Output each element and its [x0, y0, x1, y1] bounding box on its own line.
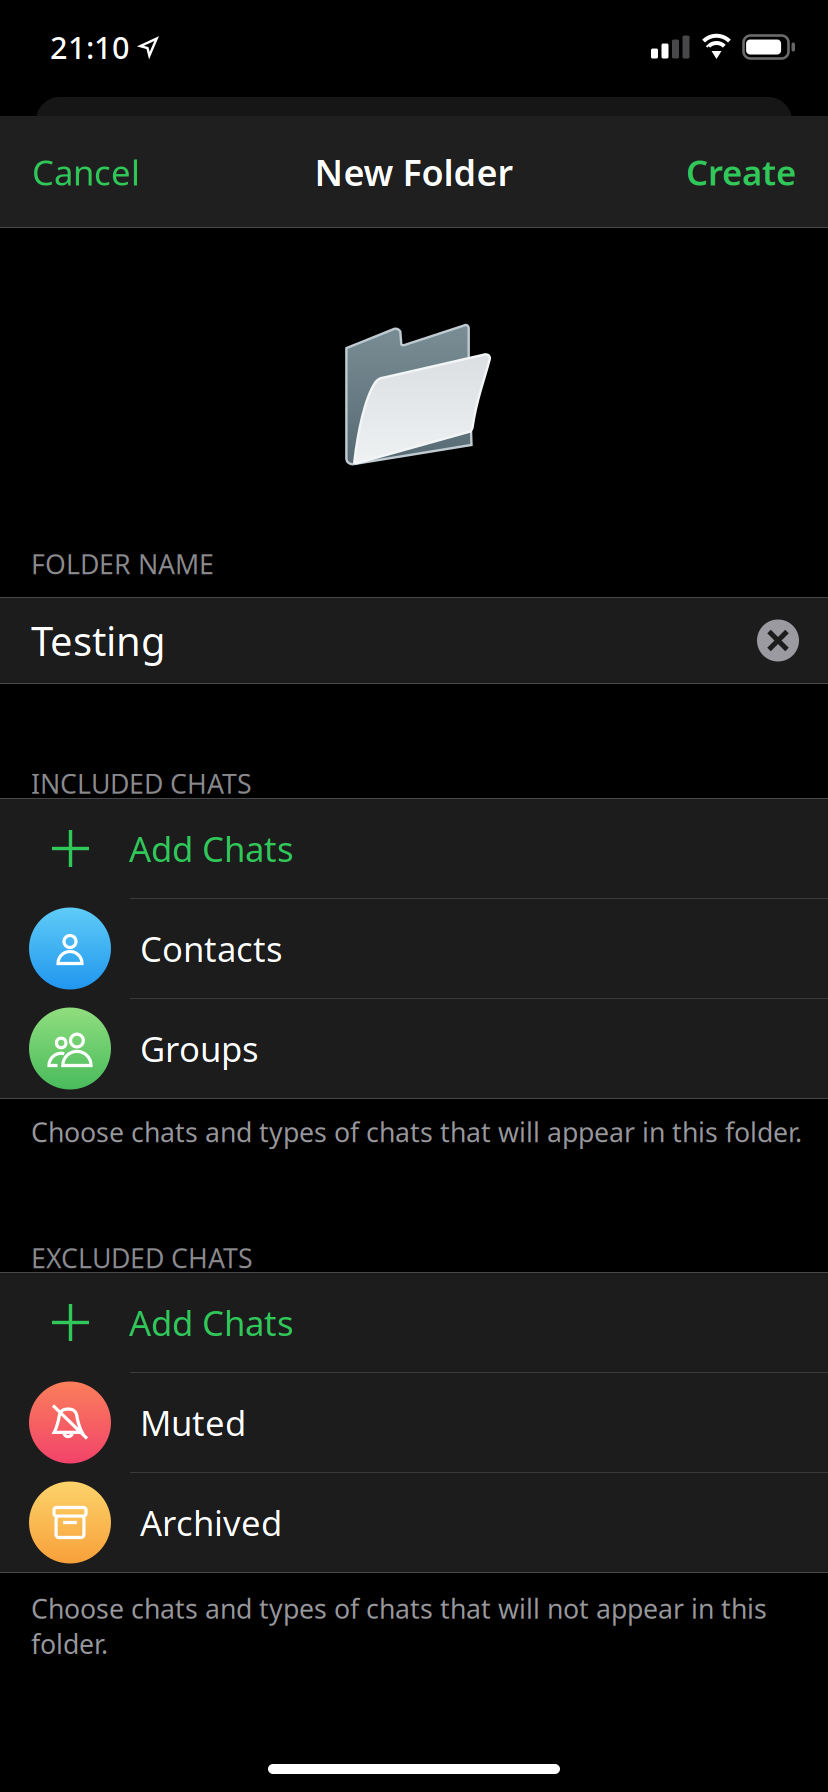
staticText: INCLUDED CHATS [31, 766, 252, 801]
button[interactable]: Add Chats [0, 1273, 828, 1372]
staticText: Add Chats [129, 825, 294, 871]
staticText: Groups [140, 1025, 259, 1071]
staticText: Cancel [32, 149, 140, 195]
staticText: Choose chats and types of chats that wil… [31, 1114, 802, 1150]
staticText: EXCLUDED CHATS [31, 1240, 253, 1276]
staticText: Create [686, 149, 796, 195]
button[interactable]: Add Chats [0, 799, 828, 898]
button[interactable]: Muted [0, 1373, 828, 1472]
staticText: FOLDER NAME [31, 546, 214, 582]
staticText: Contacts [140, 925, 283, 971]
button[interactable]: Create [660, 115, 828, 228]
button[interactable]: Clear text [738, 597, 818, 684]
staticText: Add Chats [129, 1299, 294, 1345]
staticText: Archived [140, 1499, 282, 1545]
staticText: New Folder [314, 148, 513, 196]
staticText: Testing [31, 614, 166, 667]
staticText: Muted [140, 1399, 246, 1445]
staticText: 21:10 [50, 27, 130, 67]
staticText: Choose chats and types of chats that wil… [31, 1591, 767, 1661]
button[interactable]: Groups [0, 999, 828, 1098]
button[interactable]: Contacts [0, 899, 828, 998]
button[interactable]: Archived [0, 1473, 828, 1572]
button[interactable]: Cancel [0, 115, 166, 228]
